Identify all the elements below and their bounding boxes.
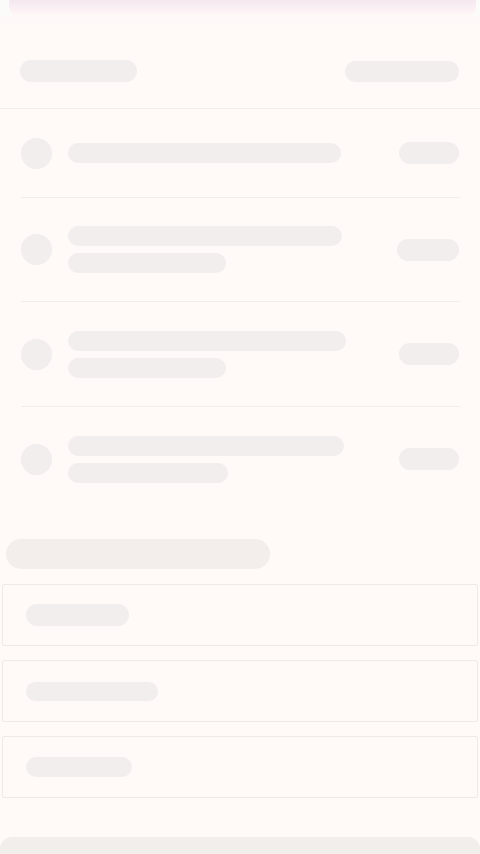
button[interactable]: List item 1	[0, 109, 480, 197]
button[interactable]: Card 3	[2, 736, 478, 798]
button[interactable]: Card 2	[2, 660, 478, 722]
button[interactable]: List item 2	[0, 198, 480, 301]
button[interactable]: Card 1	[2, 584, 478, 646]
button[interactable]: List item 3	[0, 302, 480, 406]
button[interactable]: List item 4	[0, 407, 480, 511]
